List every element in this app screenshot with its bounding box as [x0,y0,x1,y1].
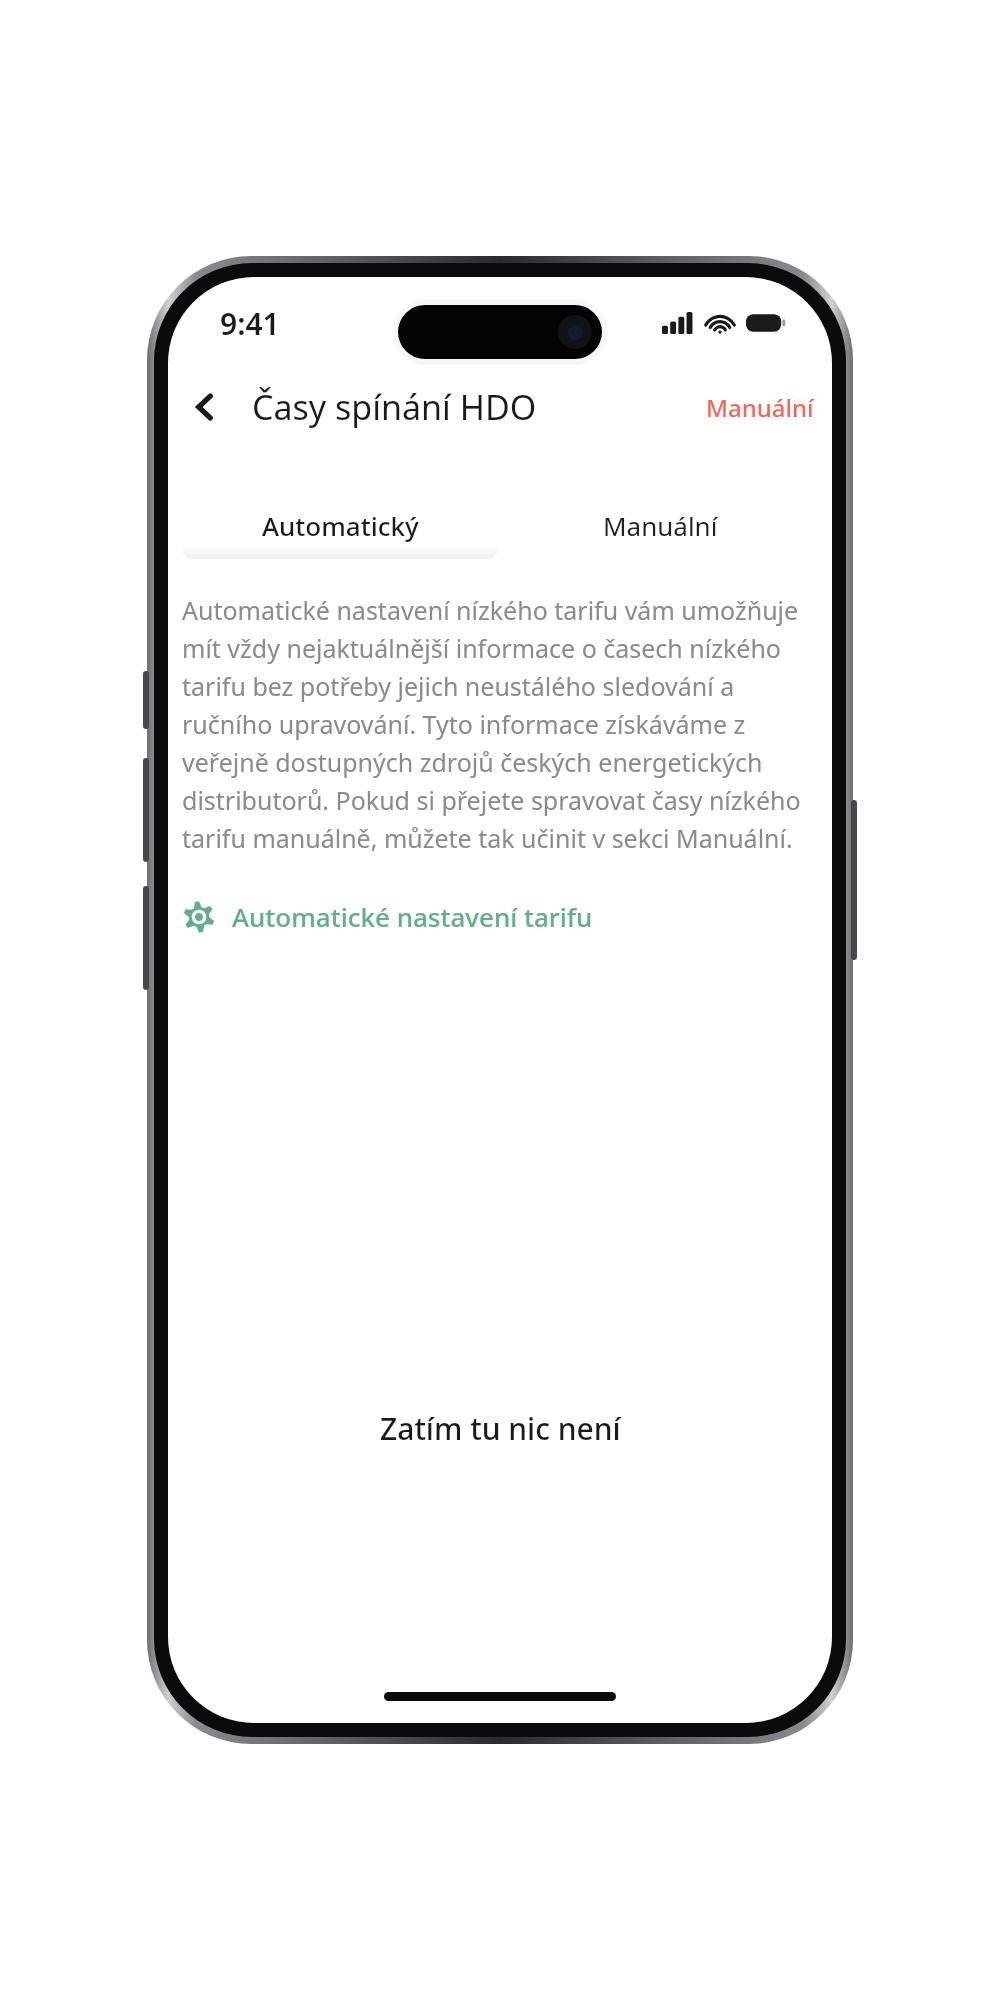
staticText: Manuální [603,508,718,543]
staticText: Automatický [262,508,419,543]
button[interactable]: Automatický [180,491,500,559]
staticText: Manuální [706,391,814,424]
button[interactable]: Manuální [500,491,820,559]
staticText: Automatické nastavení nízkého tarifu vám… [182,593,818,855]
staticText: 9:41 [220,303,280,344]
button[interactable]: Manuální [694,381,826,434]
button[interactable]: Back [176,378,234,436]
staticText: Automatické nastavení tarifu [232,899,593,934]
staticText: Časy spínání HDO [252,384,537,430]
button[interactable]: Automatické nastavení tarifu [178,891,597,942]
staticText: Zatím tu nic není [380,1408,621,1449]
